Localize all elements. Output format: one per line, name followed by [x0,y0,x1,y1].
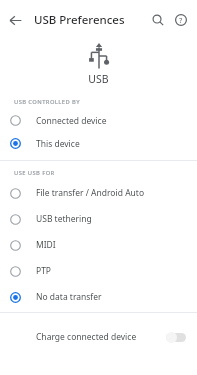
staticText: MIDI [36,239,56,251]
button[interactable]: MIDI [0,232,197,258]
button[interactable]: File transfer / Android Auto [0,180,197,206]
staticText: ? [179,15,183,25]
button[interactable]: USB tethering [0,206,197,232]
staticText: No data transfer [36,291,102,303]
staticText: USE USB FOR [14,169,55,177]
staticText: Connected device [36,115,107,127]
staticText: USB CONTROLLED BY [14,98,80,106]
button[interactable]: Connected device [0,109,197,132]
button[interactable]: Charge connected device [0,313,197,360]
button[interactable]: No data transfer [0,284,197,310]
staticText: USB tethering [36,213,92,225]
button[interactable]: This device [0,132,197,155]
other: Charge connected device toggle [166,330,188,344]
staticText: This device [36,138,80,150]
staticText: PTP [36,265,52,277]
staticText: File transfer / Android Auto [36,187,145,199]
button[interactable]: Back [5,10,26,31]
button[interactable]: Search [147,9,169,31]
button[interactable]: Help [170,9,192,31]
button[interactable]: PTP [0,258,197,284]
staticText: USB Preferences [34,12,125,28]
staticText: USB [88,72,109,86]
staticText: Charge connected device [36,331,137,343]
